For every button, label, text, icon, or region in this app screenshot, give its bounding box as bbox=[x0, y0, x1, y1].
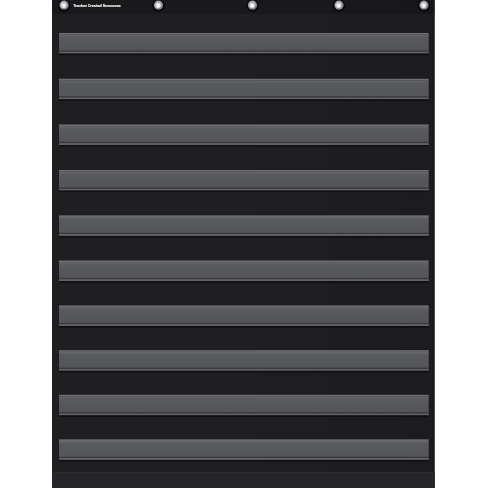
button[interactable]: Black 10 Pocket Chart product photo bbox=[0, 0, 488, 488]
